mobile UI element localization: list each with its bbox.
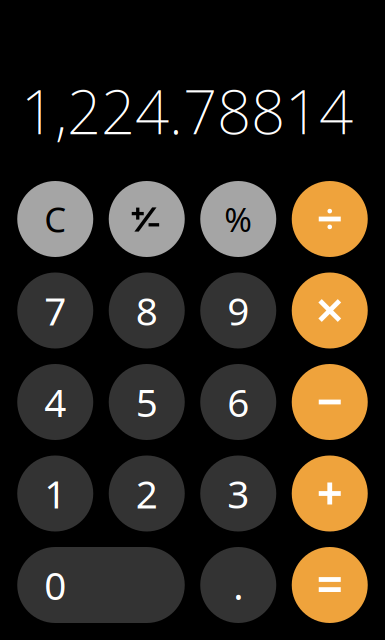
button[interactable]: %	[200, 181, 276, 257]
button[interactable]: 0	[17, 547, 185, 623]
button[interactable]: 4	[17, 364, 93, 440]
staticText: 4	[44, 376, 66, 428]
staticText: 1,224.78814	[21, 71, 353, 151]
staticText: 7	[44, 285, 66, 336]
button[interactable]: Divide	[292, 181, 368, 257]
button[interactable]: 8	[109, 272, 185, 348]
button[interactable]: .	[200, 547, 276, 623]
button[interactable]: 3	[200, 455, 276, 531]
button[interactable]: Multiply	[292, 272, 368, 348]
staticText: 2	[136, 468, 158, 519]
staticText: .	[233, 559, 243, 611]
button[interactable]: 5	[109, 364, 185, 440]
staticText: 8	[136, 285, 158, 336]
staticText: 1	[44, 468, 66, 519]
button[interactable]: Toggle sign	[109, 181, 185, 257]
staticText: C	[44, 196, 66, 242]
staticText: 6	[227, 376, 249, 428]
staticText: 3	[227, 468, 249, 519]
button[interactable]: 9	[200, 272, 276, 348]
button[interactable]: C	[17, 181, 93, 257]
button[interactable]: 6	[200, 364, 276, 440]
staticText: 5	[136, 376, 158, 428]
button[interactable]: Add	[292, 455, 368, 531]
staticText: 9	[227, 285, 249, 336]
button[interactable]: 7	[17, 272, 93, 348]
button[interactable]: Equals	[292, 547, 368, 623]
button[interactable]: 2	[109, 455, 185, 531]
button[interactable]: 1	[17, 455, 93, 531]
staticText: %	[224, 197, 252, 241]
button[interactable]: Subtract	[292, 364, 368, 440]
staticText: 0	[44, 559, 66, 611]
